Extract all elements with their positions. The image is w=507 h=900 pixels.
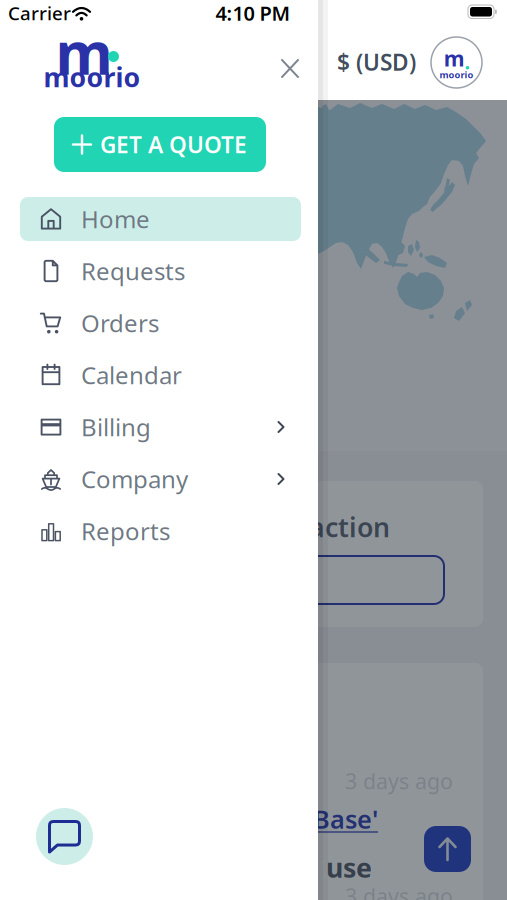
button[interactable]: Chat — [36, 808, 93, 865]
button[interactable]: GET A QUOTE — [54, 117, 266, 172]
staticText: moorio — [43, 59, 140, 95]
staticText: Requests — [81, 255, 185, 287]
staticText: Carrier — [8, 1, 71, 25]
staticText: GET A QUOTE — [100, 129, 247, 159]
button[interactable]: Requests — [20, 249, 301, 293]
staticText: Take action — [241, 509, 390, 545]
staticText: Calendar — [81, 359, 182, 391]
button[interactable]: Close menu — [278, 56, 302, 81]
button[interactable]: Scroll to top — [424, 826, 471, 872]
button[interactable]: Reports — [20, 509, 301, 553]
staticText: moorio — [439, 68, 473, 81]
staticText: 3 days ago — [345, 882, 453, 900]
staticText: Reports — [81, 515, 170, 547]
button[interactable]: Account — [431, 37, 482, 88]
button[interactable]: Home — [20, 197, 301, 241]
staticText: Orders — [81, 307, 159, 339]
staticText: $ (USD) — [337, 47, 416, 77]
button[interactable]: $ (USD) — [337, 47, 416, 77]
button[interactable]: Billing — [20, 405, 301, 449]
staticText: Company — [81, 463, 188, 495]
staticText: Home — [81, 203, 150, 235]
staticText: 3 days ago — [345, 767, 453, 795]
staticText: Learn how-to use — [142, 850, 372, 885]
staticText: m — [55, 13, 112, 91]
button[interactable]: Orders — [20, 301, 301, 345]
button[interactable]: article in the 'Knowledge Base' — [0, 802, 378, 836]
staticText: 4:10 PM — [215, 0, 290, 26]
staticText: article in the 'Knowledge Base' — [0, 802, 378, 836]
button[interactable]: Company — [20, 457, 301, 501]
staticText: m — [444, 44, 465, 72]
staticText: Billing — [81, 411, 151, 443]
button[interactable]: Calendar — [20, 353, 301, 397]
